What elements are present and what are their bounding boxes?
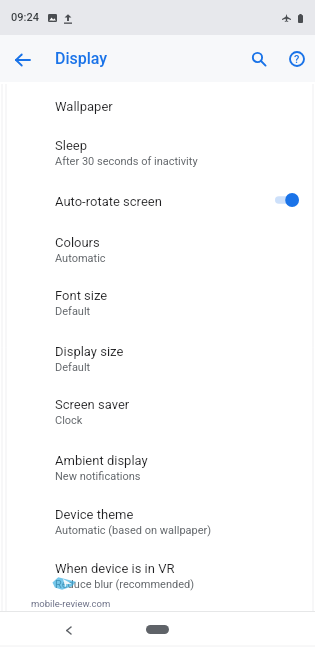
staticText: Default [55,361,91,374]
button[interactable]: Device theme [0,492,315,546]
staticText: After 30 seconds of inactivity [55,155,198,168]
staticText: Default [55,305,91,318]
staticText: ? [294,53,300,66]
staticText: Clock [55,414,83,427]
staticText: Display [55,49,108,68]
button[interactable]: Auto-rotate screen toggle [269,190,299,210]
button[interactable]: Auto-rotate screen [0,180,315,220]
staticText: Display size [55,344,124,359]
staticText: Reduce blur (recommended) [55,578,195,591]
button[interactable]: Display size [0,330,315,384]
staticText: Screen saver [55,397,130,412]
button[interactable]: Back [8,45,37,74]
button[interactable]: Help [283,45,311,73]
staticText: Auto-rotate screen [55,194,162,209]
staticText: Font size [55,288,108,303]
staticText: New notifications [55,470,141,483]
button[interactable]: Search [245,45,273,73]
button[interactable]: Home [146,625,169,634]
button[interactable]: Colours [0,220,315,275]
staticText: Device theme [55,507,134,522]
staticText: When device is in VR [55,561,175,576]
staticText: Automatic (based on wallpaper) [55,524,212,537]
button[interactable]: Font size [0,275,315,330]
staticText: 09:24 [11,11,39,24]
button[interactable]: Wallpaper [0,85,315,125]
button[interactable]: When device is in VR [0,546,315,600]
staticText: Wallpaper [55,99,113,114]
staticText: Automatic [55,252,106,265]
button[interactable]: Ambient display [0,438,315,492]
staticText: Sleep [55,138,87,153]
staticText: Colours [55,235,100,250]
staticText: Ambient display [55,453,148,468]
button[interactable]: Back [56,618,80,642]
staticText: mobile-review.com [31,598,111,609]
button[interactable]: Screen saver [0,384,315,438]
button[interactable]: Sleep [0,125,315,180]
